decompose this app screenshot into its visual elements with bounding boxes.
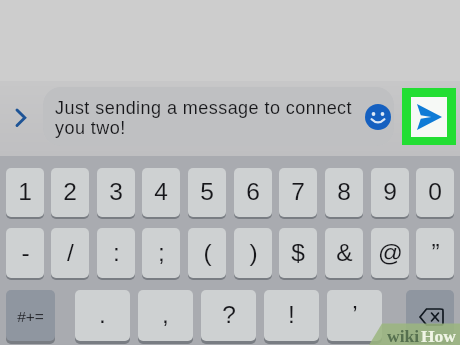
staticText: : <box>113 239 120 266</box>
button[interactable]: Delete <box>406 290 454 341</box>
button[interactable]: #+= <box>6 290 55 341</box>
button[interactable]: 7 <box>279 168 317 217</box>
button[interactable]: , <box>138 290 193 341</box>
button[interactable]: Send <box>402 88 456 145</box>
staticText: 9 <box>383 178 397 205</box>
staticText: ; <box>158 239 165 266</box>
button[interactable]: ? <box>201 290 256 341</box>
staticText: 7 <box>291 178 305 205</box>
button[interactable]: : <box>97 228 135 278</box>
button[interactable]: / <box>51 228 89 278</box>
staticText: ? <box>222 301 236 328</box>
button[interactable]: ! <box>264 290 319 341</box>
staticText: 8 <box>337 178 351 205</box>
button[interactable] <box>43 87 394 146</box>
button[interactable]: 5 <box>188 168 226 217</box>
button[interactable]: @ <box>371 228 409 278</box>
staticText: 4 <box>154 178 168 205</box>
button[interactable]: 8 <box>325 168 363 217</box>
button[interactable]: 4 <box>142 168 180 217</box>
staticText: Just sending a message to connect you tw… <box>55 98 353 137</box>
staticText: 2 <box>63 178 77 205</box>
button[interactable]: ) <box>234 228 272 278</box>
staticText: ” <box>431 239 440 266</box>
staticText: #+= <box>17 308 44 325</box>
button[interactable]: . <box>75 290 130 341</box>
staticText: 1 <box>18 178 32 205</box>
button[interactable]: 0 <box>416 168 454 217</box>
staticText: , <box>162 301 169 328</box>
staticText: @ <box>378 239 403 266</box>
staticText: ! <box>288 301 295 328</box>
button[interactable]: 1 <box>6 168 44 217</box>
staticText: ’ <box>352 301 358 328</box>
staticText: . <box>99 301 106 328</box>
staticText: - <box>21 239 30 266</box>
button[interactable]: 2 <box>51 168 89 217</box>
button[interactable]: Emoji <box>365 104 391 130</box>
staticText: 5 <box>200 178 214 205</box>
button[interactable]: & <box>325 228 363 278</box>
staticText: 6 <box>246 178 260 205</box>
staticText: 3 <box>109 178 123 205</box>
staticText: & <box>336 239 353 266</box>
button[interactable]: ” <box>416 228 454 278</box>
button[interactable]: ’ <box>327 290 382 341</box>
button[interactable]: $ <box>279 228 317 278</box>
staticText: How <box>421 326 456 345</box>
button[interactable]: ( <box>188 228 226 278</box>
staticText: $ <box>291 239 305 266</box>
button[interactable]: 9 <box>371 168 409 217</box>
button[interactable]: 6 <box>234 168 272 217</box>
staticText: ( <box>203 239 212 266</box>
staticText: ) <box>249 239 258 266</box>
button[interactable]: Expand actions <box>6 100 36 136</box>
button[interactable]: ; <box>142 228 180 278</box>
staticText: 0 <box>428 178 442 205</box>
button[interactable]: - <box>6 228 44 278</box>
staticText: / <box>67 239 74 266</box>
button[interactable]: 3 <box>97 168 135 217</box>
staticText: wiki <box>387 326 420 345</box>
